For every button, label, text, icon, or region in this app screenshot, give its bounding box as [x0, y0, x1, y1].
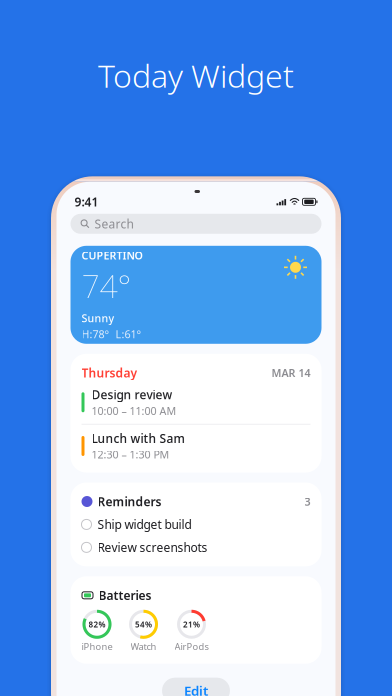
staticText: Reminders — [97, 493, 161, 509]
staticText: Lunch with Sam — [91, 430, 184, 446]
button[interactable]: Thursday — [70, 354, 321, 472]
staticText: AirPods — [174, 640, 208, 653]
button[interactable]: Search — [70, 214, 321, 234]
staticText: Sunny — [81, 311, 114, 325]
staticText: 3 — [304, 494, 310, 509]
staticText: 21% — [183, 619, 200, 630]
staticText: 74° — [81, 264, 131, 307]
staticText: 82% — [88, 619, 105, 630]
staticText: Search — [94, 216, 133, 232]
staticText: Watch — [130, 640, 156, 653]
staticText: Edit — [184, 682, 208, 696]
staticText: 12:30 – 1:30 PM — [91, 447, 169, 462]
staticText: 54% — [135, 619, 152, 630]
staticText: 9:41 — [74, 194, 98, 210]
button[interactable]: Batteries — [70, 576, 321, 664]
staticText: Today Widget — [98, 54, 294, 96]
staticText: H:78° L:61° — [81, 327, 141, 341]
staticText: MAR 14 — [271, 366, 310, 380]
button[interactable]: CUPERTINO — [70, 246, 321, 344]
staticText: Design review — [91, 387, 172, 403]
button[interactable]: Reminders — [70, 482, 321, 566]
staticText: Thursday — [81, 365, 137, 381]
staticText: 10:00 – 11:00 AM — [91, 404, 176, 418]
staticText: CUPERTINO — [81, 248, 142, 262]
button[interactable]: Edit — [162, 678, 230, 696]
staticText: Ship widget build — [97, 516, 191, 532]
staticText: iPhone — [81, 640, 112, 653]
staticText: Batteries — [98, 587, 151, 603]
staticText: Review screenshots — [97, 539, 207, 555]
